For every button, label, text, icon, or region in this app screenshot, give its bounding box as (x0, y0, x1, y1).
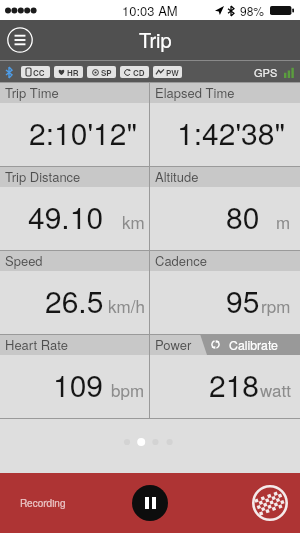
button[interactable]: Power (150, 334, 300, 418)
staticText: 80 (226, 195, 260, 238)
button[interactable]: Trip Distance (0, 166, 149, 250)
staticText: CD (133, 67, 145, 78)
staticText: 26.5 (45, 279, 104, 322)
staticText: Heart Rate (5, 335, 68, 354)
button[interactable]: Speed (0, 250, 149, 334)
button[interactable]: Altitude (150, 166, 300, 250)
staticText: bpm (111, 377, 145, 401)
button[interactable]: CC (21, 66, 50, 78)
staticText: Calibrate (229, 336, 278, 354)
staticText: 218 (209, 363, 260, 406)
staticText: SP (101, 67, 112, 78)
button[interactable]: Calibrate (200, 334, 300, 355)
staticText: 95 (226, 279, 260, 322)
staticText: Cadence (155, 251, 208, 270)
button[interactable]: Pause (132, 485, 168, 521)
staticText: HR (67, 67, 79, 78)
staticText: CC (33, 67, 45, 78)
staticText: 1:42'38" (177, 111, 286, 154)
staticText: Trip (139, 25, 172, 54)
staticText: watt (260, 377, 291, 401)
button[interactable]: Elapsed Time (150, 82, 300, 166)
staticText: GPS (254, 64, 278, 80)
button[interactable]: Finish ride (252, 485, 288, 521)
staticText: 10:03 AM (122, 1, 178, 20)
staticText: Speed (5, 251, 43, 270)
staticText: Recording (20, 496, 66, 510)
staticText: m (276, 209, 291, 233)
button[interactable]: Trip Time (0, 82, 149, 166)
staticText: 49.10 (28, 195, 104, 238)
staticText: PW (166, 67, 179, 78)
button[interactable]: SP (87, 66, 116, 78)
button[interactable]: Cadence (150, 250, 300, 334)
staticText: 2:10'12" (29, 111, 138, 154)
button[interactable]: PW (153, 66, 182, 78)
button[interactable]: Heart Rate (0, 334, 149, 418)
button[interactable]: CD (120, 66, 149, 78)
staticText: Power (155, 335, 192, 354)
staticText: Trip Time (5, 83, 59, 102)
staticText: 98% (240, 2, 265, 19)
button[interactable]: Menu (7, 27, 33, 53)
staticText: Elapsed Time (155, 83, 235, 102)
staticText: Altitude (155, 167, 199, 186)
staticText: km/h (108, 293, 145, 317)
button[interactable]: HR (54, 66, 83, 78)
staticText: Trip Distance (5, 167, 81, 186)
staticText: 109 (53, 363, 104, 406)
staticText: rpm (261, 293, 291, 317)
staticText: km (122, 209, 145, 233)
